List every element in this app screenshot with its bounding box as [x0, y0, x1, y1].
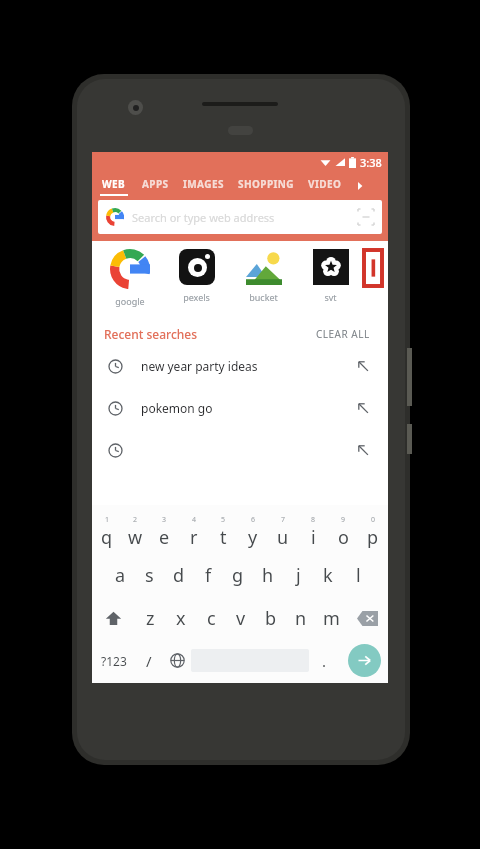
button[interactable]: IMAGES [183, 177, 224, 196]
button[interactable]: 4 [179, 511, 208, 554]
staticText: 0 [371, 515, 376, 525]
button[interactable]: VIDEO [308, 177, 342, 196]
button[interactable]: l [343, 554, 373, 597]
button[interactable]: Backspace [346, 597, 388, 640]
staticText: y [248, 525, 258, 550]
button[interactable]: z [135, 597, 166, 640]
staticText: 7 [281, 515, 286, 525]
button[interactable]: x [166, 597, 196, 640]
button[interactable]: 0 [358, 511, 388, 554]
staticText: r [190, 525, 198, 550]
button[interactable]: APPS [142, 177, 169, 196]
button[interactable]: new year party ideas [92, 345, 388, 387]
button[interactable]: Change language [163, 640, 191, 681]
button[interactable]: 1 [92, 511, 121, 554]
button[interactable]: v [226, 597, 256, 640]
staticText: d [173, 563, 185, 588]
staticText: pexels [183, 291, 210, 303]
staticText: n [295, 606, 307, 631]
button[interactable]: j [283, 554, 313, 597]
staticText: WEB [102, 177, 126, 191]
button[interactable]: ?123 [92, 640, 135, 681]
staticText: q [101, 525, 113, 550]
button[interactable]: b [256, 597, 286, 640]
button[interactable]: 7 [268, 511, 298, 554]
staticText: 1 [105, 515, 110, 525]
staticText: j [296, 563, 301, 588]
staticText: pokemon go [141, 400, 213, 416]
staticText: c [207, 606, 216, 631]
other: Insert query [356, 443, 370, 457]
button[interactable]: f [193, 554, 223, 597]
staticText: bucket [249, 291, 278, 303]
staticText: ?123 [101, 653, 127, 669]
button[interactable]: google [96, 249, 163, 307]
button[interactable]: c [196, 597, 226, 640]
staticText: 5 [221, 515, 226, 525]
staticText: b [265, 606, 277, 631]
button[interactable]: g [223, 554, 253, 597]
staticText: p [367, 525, 379, 550]
staticText: g [232, 563, 244, 588]
staticText: Recent searches [104, 326, 198, 342]
button[interactable]: 9 [328, 511, 358, 554]
staticText: 9 [341, 515, 346, 525]
button[interactable]: s [135, 554, 164, 597]
button[interactable]: 5 [208, 511, 238, 554]
staticText: 8 [311, 515, 316, 525]
button[interactable]: / [135, 640, 163, 681]
staticText: l [356, 563, 361, 588]
staticText: VIDEO [308, 177, 342, 191]
button[interactable]: svt [297, 249, 364, 303]
staticText: IMAGES [183, 177, 224, 191]
staticText: v [236, 606, 246, 631]
button[interactable]: Shift [92, 597, 135, 640]
staticText: 2 [133, 515, 138, 525]
button[interactable]: bucket [230, 249, 297, 303]
other: Insert query [356, 359, 370, 373]
staticText: o [338, 525, 349, 550]
button[interactable]: 6 [238, 511, 268, 554]
button[interactable]: pokemon go [92, 387, 388, 429]
button[interactable]: pexels [163, 249, 230, 303]
staticText: google [115, 295, 145, 307]
button[interactable]: a [106, 554, 135, 597]
button[interactable]: n [286, 597, 316, 640]
staticText: Search or type web address [132, 210, 275, 225]
staticText: svt [324, 291, 337, 303]
button[interactable]: Search or type web address [98, 200, 382, 234]
staticText: 6 [251, 515, 256, 525]
button[interactable]: 8 [298, 511, 328, 554]
staticText: APPS [142, 177, 169, 191]
button[interactable]: 2 [121, 511, 150, 554]
button[interactable]: m [316, 597, 346, 640]
staticText: u [277, 525, 289, 550]
staticText: w [128, 525, 143, 550]
staticText: i [311, 525, 316, 550]
button[interactable]: Search [348, 644, 381, 677]
other: Google Lens [358, 209, 374, 225]
button[interactable]: h [253, 554, 283, 597]
button[interactable]: CLEAR ALL [312, 323, 374, 345]
button[interactable]: 3 [150, 511, 179, 554]
staticText: s [145, 563, 154, 588]
staticText: 3 [162, 515, 167, 525]
button[interactable]: SHOPPING [238, 177, 294, 196]
staticText: SHOPPING [238, 177, 294, 191]
staticText: h [262, 563, 274, 588]
staticText: x [176, 606, 186, 631]
staticText: . [322, 651, 327, 671]
staticText: 4 [192, 515, 197, 525]
staticText: z [146, 606, 155, 631]
staticText: / [146, 651, 152, 671]
staticText: new year party ideas [141, 358, 258, 374]
button[interactable]: Insert query [92, 429, 388, 471]
other: Insert query [356, 401, 370, 415]
staticText: CLEAR ALL [316, 327, 370, 341]
button[interactable]: WEB [100, 177, 128, 196]
button[interactable]: d [164, 554, 193, 597]
button[interactable]: k [313, 554, 343, 597]
button[interactable]: . [309, 640, 340, 681]
staticText: f [205, 563, 212, 588]
